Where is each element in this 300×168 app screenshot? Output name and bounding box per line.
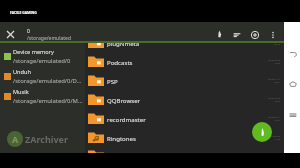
staticText: recordmaster	[107, 115, 146, 123]
button[interactable]: Add	[245, 28, 265, 41]
staticText: /storage/emulated/0/M...	[13, 97, 83, 105]
staticText: 08:41	[274, 81, 280, 84]
button[interactable]: Home	[287, 78, 298, 89]
staticText: Musik	[13, 88, 29, 96]
staticText: A	[12, 133, 19, 145]
staticText: FACILE GAMING	[10, 10, 37, 15]
staticText: Unduh	[13, 68, 31, 76]
button[interactable]: PSP	[0, 71, 284, 90]
staticText: 2017-11-02	[268, 40, 280, 43]
staticText: /storage/emulated/0	[13, 57, 71, 65]
staticText: /storage/emulated/0/D...	[13, 77, 82, 85]
staticText: 21:37	[274, 119, 280, 122]
staticText: 14:22	[274, 62, 280, 65]
staticText: 2018-03-29	[268, 97, 280, 100]
staticText: PSP	[107, 77, 118, 85]
button[interactable]: plugNmeta	[0, 33, 284, 52]
button[interactable]: recordmaster	[0, 109, 284, 128]
staticText: 2018-01-17	[268, 78, 280, 81]
staticText: Podcasts	[107, 58, 133, 66]
button[interactable]: Samsung	[0, 147, 284, 153]
button[interactable]: Musik	[0, 86, 85, 106]
staticText: 2018-05-03	[268, 59, 280, 62]
staticText: plugNmeta	[107, 39, 140, 47]
staticText: Ringtones	[107, 134, 136, 142]
staticText: 2017-09-08	[268, 135, 280, 138]
staticText: 09:15	[274, 43, 280, 46]
button[interactable]: A	[7, 131, 69, 147]
staticText: 2018-02-11	[268, 116, 280, 119]
button[interactable]: Recents	[287, 109, 298, 120]
button[interactable]: Device memory	[0, 46, 85, 66]
button[interactable]: Ringtones	[0, 128, 284, 147]
staticText: 11:50	[274, 138, 280, 141]
staticText: 19:03	[274, 100, 280, 103]
staticText: ZArchiver	[25, 133, 69, 145]
button[interactable]: Back	[287, 48, 298, 59]
button[interactable]: Close	[0, 28, 21, 41]
staticText: Device memory	[13, 48, 54, 56]
button[interactable]: Paste	[211, 28, 228, 41]
staticText: /storage/emulated	[27, 35, 71, 41]
button[interactable]: More options	[265, 28, 280, 41]
staticText: QQBrowser	[107, 96, 141, 104]
button[interactable]: QQBrowser	[0, 90, 284, 109]
button[interactable]: Podcasts	[0, 52, 284, 71]
staticText: 0	[27, 28, 30, 35]
button[interactable]: Sort	[228, 28, 245, 41]
button[interactable]: Unduh	[0, 66, 85, 86]
button[interactable]: New	[252, 122, 272, 142]
